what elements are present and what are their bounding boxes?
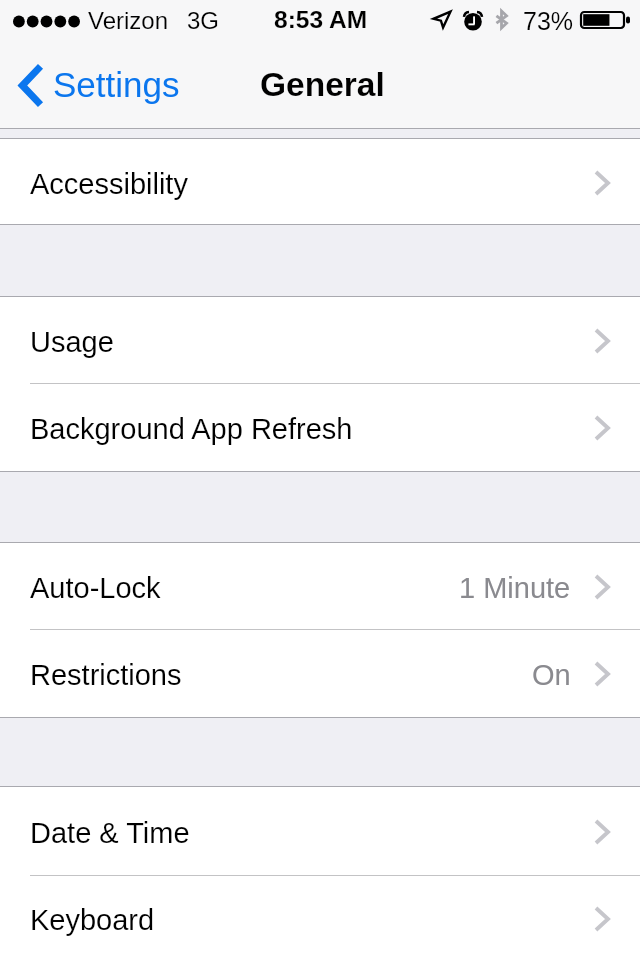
- staticText: 73%: [523, 7, 574, 35]
- staticText: Accessibility: [30, 168, 188, 200]
- staticText: Background App Refresh: [30, 413, 353, 445]
- button[interactable]: Background App Refresh: [0, 383, 640, 471]
- staticText: Date & Time: [30, 817, 190, 849]
- staticText: 8:53 AM: [274, 6, 368, 33]
- staticText: 3G: [187, 7, 220, 34]
- staticText: Verizon: [88, 7, 169, 34]
- button[interactable]: Accessibility: [0, 139, 640, 224]
- staticText: Keyboard: [30, 904, 155, 936]
- button[interactable]: Usage: [0, 297, 640, 383]
- staticText: On: [532, 659, 571, 691]
- button[interactable]: Restrictions: [0, 629, 640, 717]
- staticText: General: [260, 66, 385, 103]
- staticText: Restrictions: [30, 659, 182, 691]
- button[interactable]: Auto-Lock: [0, 543, 640, 629]
- staticText: Auto-Lock: [30, 572, 161, 604]
- other: Back: [15, 63, 44, 108]
- staticText: 1 Minute: [459, 572, 571, 604]
- button[interactable]: Date & Time: [0, 787, 640, 875]
- staticText: Usage: [30, 326, 114, 358]
- button[interactable]: Keyboard: [0, 875, 640, 960]
- staticText: Settings: [53, 65, 180, 104]
- button[interactable]: Back: [0, 57, 192, 114]
